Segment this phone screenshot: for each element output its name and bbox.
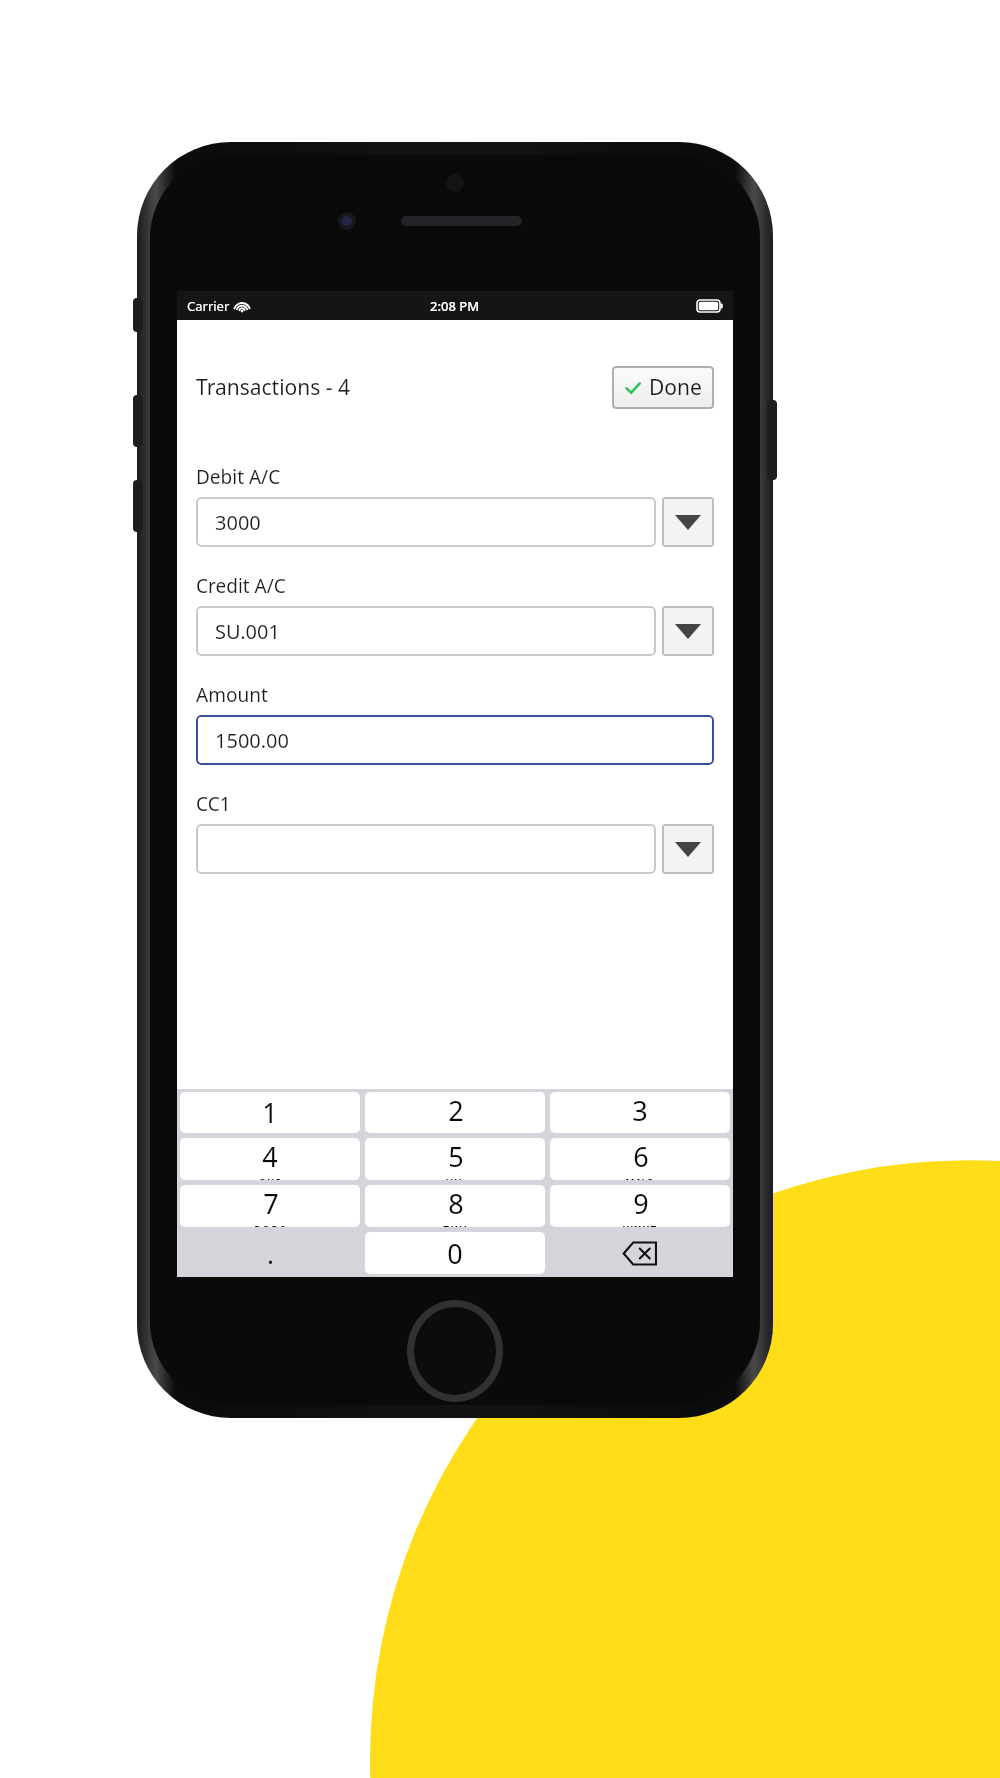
staticText: WXYZ — [623, 1223, 658, 1227]
button[interactable]: Backspace — [550, 1232, 730, 1274]
staticText: 3 — [632, 1092, 648, 1129]
staticText: Done — [649, 373, 702, 402]
button[interactable]: Done — [612, 366, 714, 409]
button[interactable]: 7 — [180, 1185, 360, 1227]
button[interactable]: 2 — [365, 1092, 545, 1133]
staticText: 3000 — [215, 509, 261, 536]
staticText: 5 — [448, 1138, 464, 1175]
staticText: 0 — [447, 1235, 463, 1272]
button[interactable] — [196, 824, 656, 874]
button[interactable]: 1 — [180, 1092, 360, 1133]
button[interactable]: 4 — [180, 1138, 360, 1180]
button[interactable]: Open dropdown — [662, 824, 714, 874]
staticText: JKL — [445, 1176, 466, 1180]
staticText: 1 — [262, 1094, 278, 1131]
button[interactable]: 0 — [365, 1232, 545, 1274]
staticText: 1500.00 — [215, 727, 289, 754]
staticText: 2 — [448, 1092, 464, 1129]
button[interactable]: 3 — [550, 1092, 730, 1133]
staticText: CC1 — [196, 791, 231, 817]
staticText: 7 — [263, 1185, 279, 1222]
button[interactable]: Open dropdown — [662, 606, 714, 656]
button[interactable]: SU.001 — [196, 606, 656, 656]
staticText: Amount — [196, 682, 268, 708]
button[interactable]: Open dropdown — [662, 497, 714, 547]
button[interactable]: 8 — [365, 1185, 545, 1227]
staticText: 6 — [633, 1138, 649, 1175]
staticText: MNO — [625, 1176, 656, 1180]
button[interactable]: 6 — [550, 1138, 730, 1180]
staticText: Credit A/C — [196, 573, 286, 599]
button[interactable]: 5 — [365, 1138, 545, 1180]
staticText: 2:08 PM — [430, 297, 480, 315]
staticText: Transactions - 4 — [196, 373, 350, 402]
staticText: SU.001 — [215, 618, 280, 645]
button[interactable]: . — [180, 1232, 360, 1274]
staticText: 4 — [262, 1138, 278, 1175]
staticText: Carrier — [187, 297, 230, 315]
button[interactable]: 3000 — [196, 497, 656, 547]
staticText: 8 — [448, 1185, 464, 1222]
button[interactable]: 1500.00 — [196, 715, 714, 765]
staticText: TUV — [443, 1223, 468, 1227]
staticText: . — [267, 1236, 274, 1271]
staticText: PQRS — [254, 1223, 287, 1227]
staticText: GHI — [258, 1176, 282, 1180]
button[interactable]: 9 — [550, 1185, 730, 1227]
staticText: 9 — [633, 1185, 649, 1222]
staticText: Debit A/C — [196, 464, 281, 490]
